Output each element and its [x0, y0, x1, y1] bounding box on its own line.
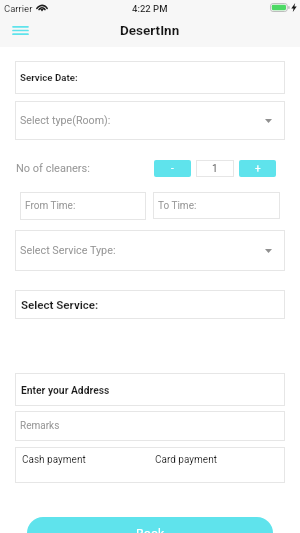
staticText: Cash payment [22, 454, 86, 466]
staticText: - [171, 163, 174, 175]
staticText: To Time: [158, 200, 197, 212]
staticText: 4:22 PM [132, 3, 168, 14]
button[interactable]: Open navigation menu [4, 17, 37, 44]
button[interactable]: From Time: [20, 192, 146, 220]
staticText: Service Date: [20, 72, 78, 83]
staticText: 1 [212, 163, 218, 175]
staticText: Book [136, 526, 165, 533]
staticText: No of cleaners: [16, 162, 90, 175]
button[interactable]: Cash payment [15, 447, 150, 472]
staticText: Select Service: [21, 298, 99, 311]
staticText: From Time: [25, 200, 76, 212]
staticText: Select Service Type: [20, 244, 116, 257]
button[interactable]: Decrease number of cleaners [154, 160, 191, 177]
button[interactable]: Enter your Address [15, 373, 285, 406]
staticText: Select type(Room): [20, 114, 111, 127]
button[interactable]: Card payment [150, 447, 285, 472]
staticText: Carrier [4, 3, 33, 14]
button[interactable]: Book [27, 517, 273, 533]
button[interactable]: Remarks [15, 411, 285, 441]
staticText: DesertInn [120, 22, 180, 38]
button[interactable]: Select Service Type: [15, 230, 285, 271]
staticText: + [255, 163, 261, 175]
button[interactable]: Select type(Room): [15, 101, 285, 140]
button[interactable]: Increase number of cleaners [239, 160, 276, 177]
staticText: Card payment [155, 454, 217, 466]
staticText: Remarks [20, 420, 60, 432]
button[interactable]: Select Service: [15, 290, 285, 319]
button[interactable]: To Time: [153, 192, 280, 219]
staticText: Enter your Address [21, 384, 110, 396]
button[interactable]: Service Date: [15, 61, 285, 94]
